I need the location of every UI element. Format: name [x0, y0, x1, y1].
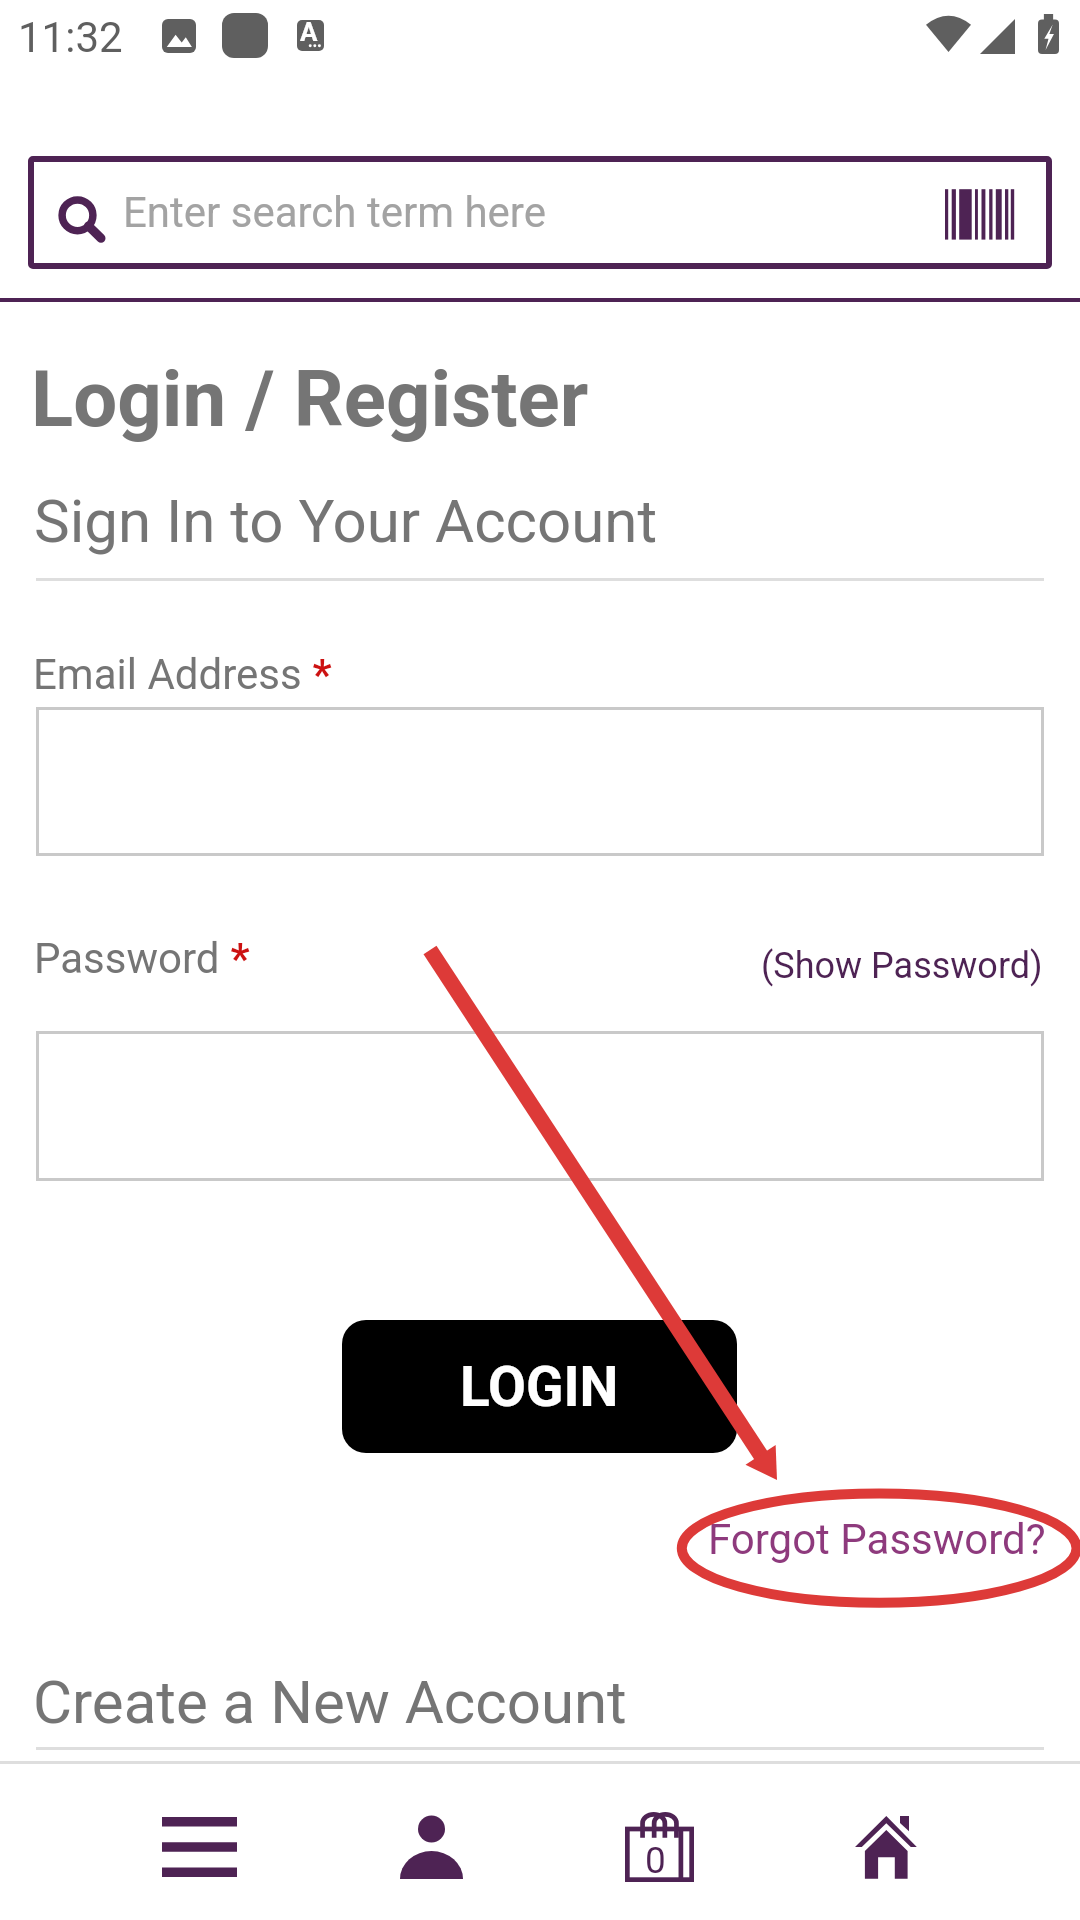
button[interactable]: Menu: [124, 1782, 274, 1912]
button[interactable]: Cart: [584, 1782, 734, 1912]
staticText: (Show Password): [761, 945, 1043, 987]
staticText: *: [220, 934, 250, 983]
button[interactable]: [36, 707, 1044, 856]
staticText: 11:32: [18, 13, 123, 62]
staticText: A: [300, 17, 318, 47]
staticText: *: [302, 650, 332, 699]
button[interactable]: LOGIN: [342, 1320, 737, 1453]
staticText: Sign In to Your Account: [34, 486, 658, 556]
staticText: Password: [34, 934, 220, 983]
button[interactable]: [28, 156, 1052, 269]
staticText: 0: [645, 1839, 666, 1882]
button[interactable]: (Show Password): [751, 933, 1051, 995]
staticText: Create a New Account: [33, 1667, 627, 1737]
staticText: Forgot Password?: [708, 1515, 1046, 1564]
staticText: Email Address: [33, 650, 302, 699]
button[interactable]: Home: [811, 1782, 961, 1912]
button[interactable]: [36, 1031, 1044, 1181]
staticText: Login / Register: [31, 354, 589, 445]
staticText: LOGIN: [460, 1355, 619, 1419]
button[interactable]: Account: [356, 1782, 506, 1912]
button[interactable]: Forgot Password?: [692, 1500, 1068, 1590]
staticText: Enter search term here: [123, 188, 546, 237]
button[interactable]: Scan barcode: [930, 180, 1030, 250]
